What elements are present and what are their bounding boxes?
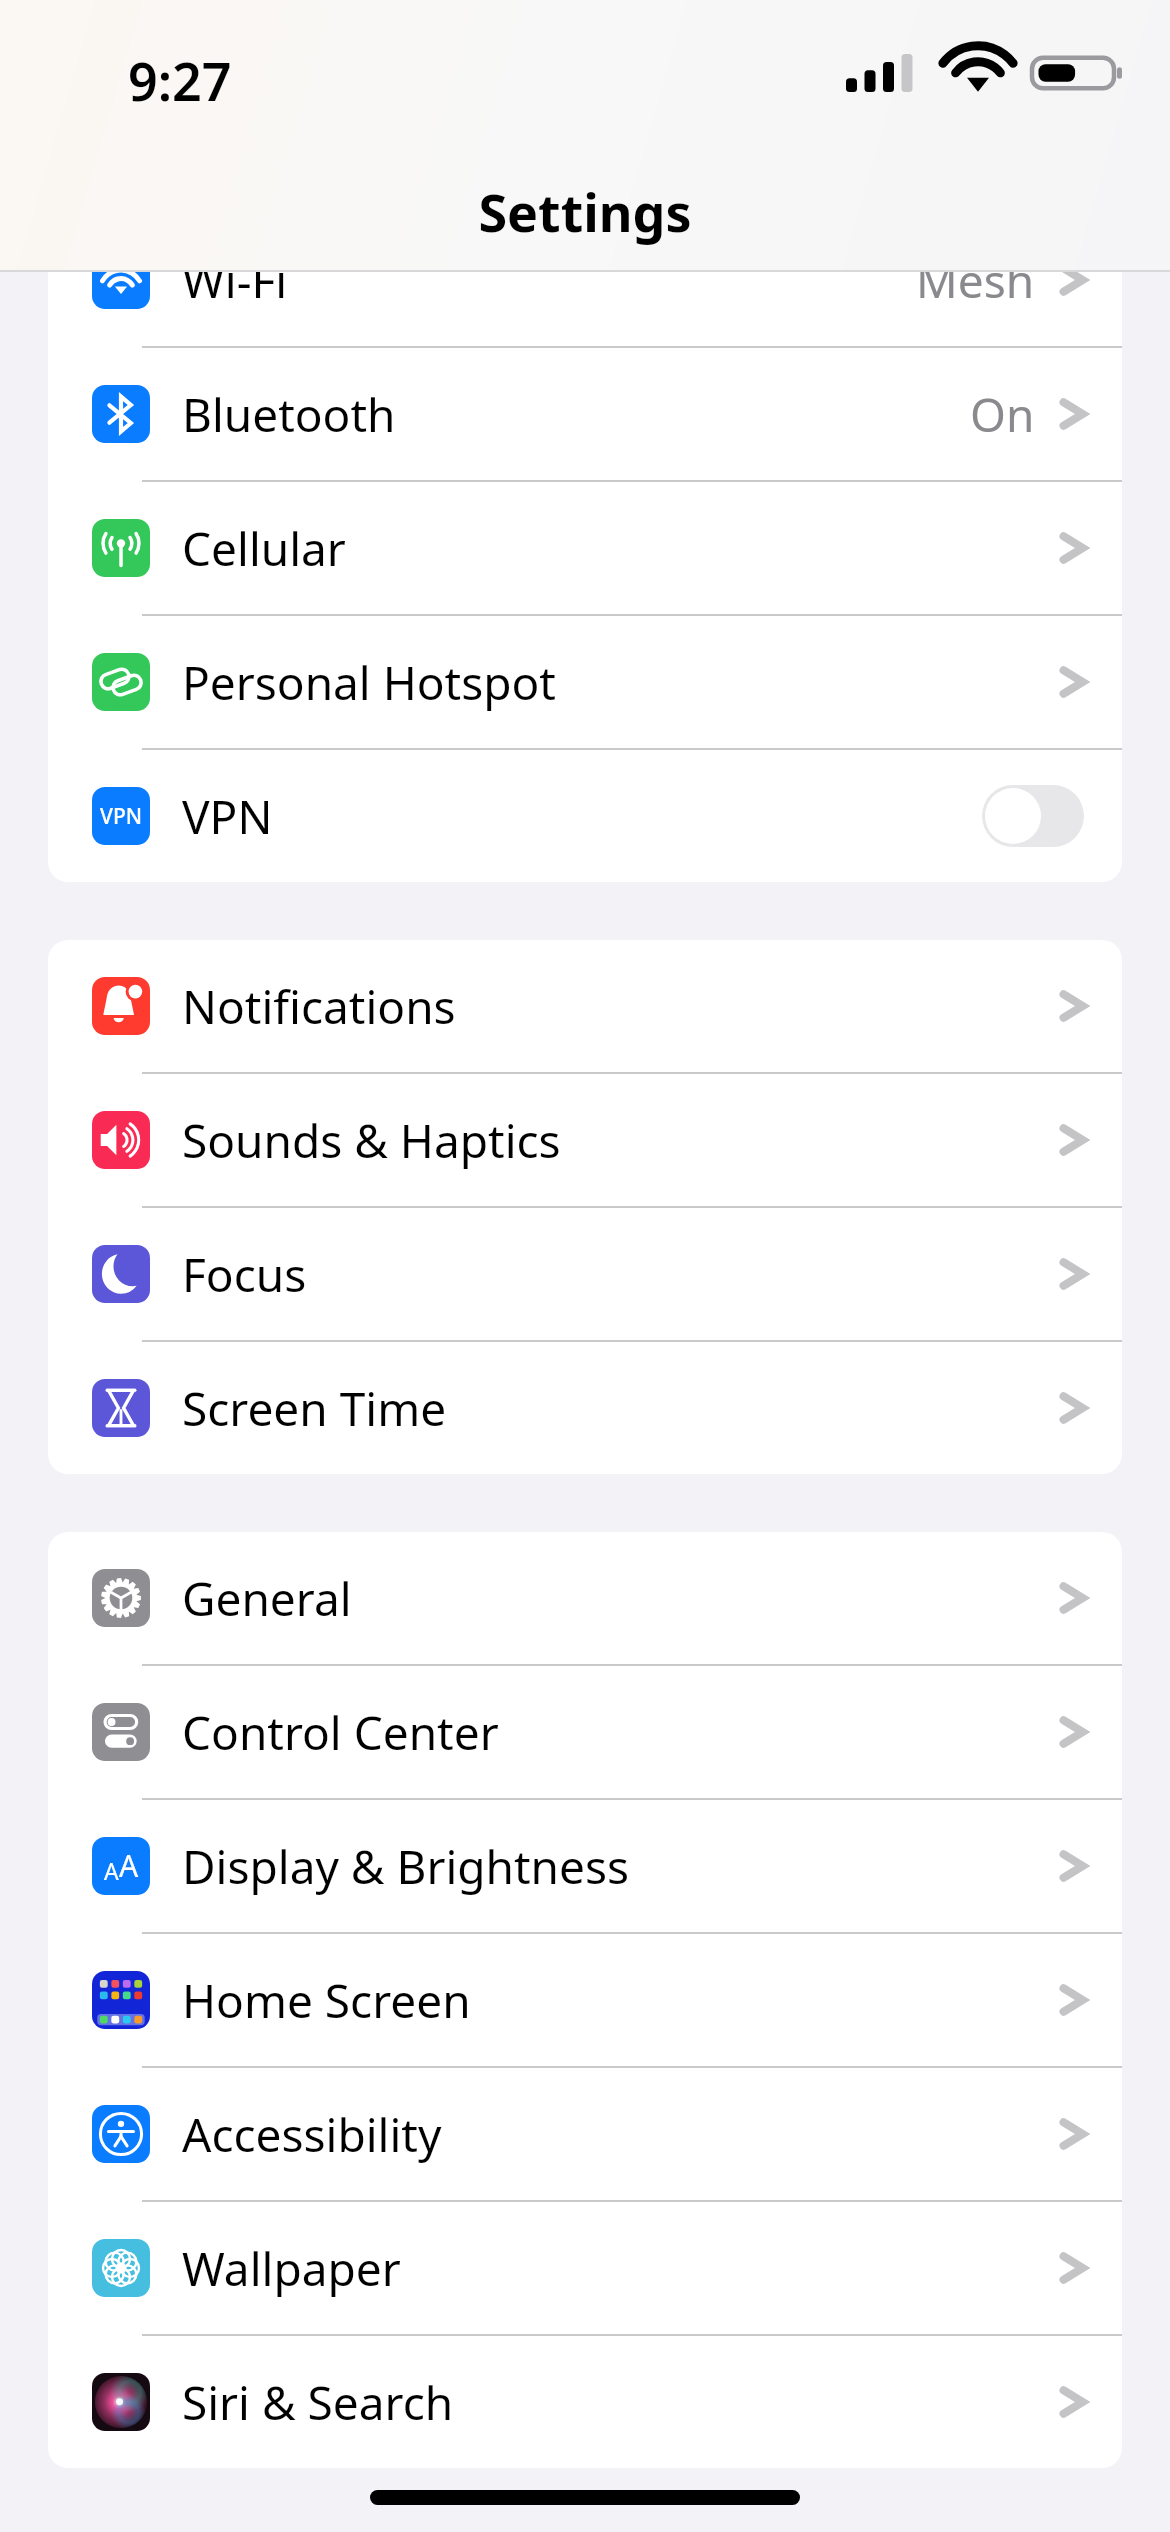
button[interactable]: Screen Time — [48, 1342, 1122, 1474]
button[interactable]: Bluetooth — [48, 348, 1122, 480]
staticText: Control Center — [182, 1701, 499, 1764]
staticText: VPN — [100, 802, 143, 831]
staticText: Notifications — [182, 975, 456, 1038]
staticText: VPN — [182, 785, 273, 848]
staticText: A — [104, 1855, 119, 1886]
staticText: Home Screen — [182, 1969, 471, 2032]
button[interactable]: VPN toggle, off — [982, 785, 1084, 847]
staticText: Screen Time — [182, 1377, 447, 1440]
staticText: Siri & Search — [182, 2371, 454, 2434]
button[interactable]: Home Screen — [48, 1934, 1122, 2066]
button[interactable]: A — [48, 1800, 1122, 1932]
staticText: Cellular — [182, 517, 346, 580]
staticText: Settings — [0, 176, 1170, 247]
button[interactable]: Cellular — [48, 482, 1122, 614]
staticText: A — [119, 1845, 139, 1886]
staticText: Display & Brightness — [182, 1835, 630, 1898]
staticText: Accessibility — [182, 2103, 442, 2166]
button[interactable]: Personal Hotspot — [48, 616, 1122, 748]
staticText: 9:27 — [128, 45, 232, 116]
button[interactable]: General — [48, 1532, 1122, 1664]
button[interactable]: Wallpaper — [48, 2202, 1122, 2334]
button[interactable]: Accessibility — [48, 2068, 1122, 2200]
staticText: Focus — [182, 1243, 307, 1306]
staticText: Mesh — [916, 272, 1035, 312]
button[interactable]: Focus — [48, 1208, 1122, 1340]
button[interactable]: Control Center — [48, 1666, 1122, 1798]
button[interactable]: Sounds & Haptics — [48, 1074, 1122, 1206]
button[interactable]: VPN — [48, 750, 1122, 882]
staticText: Sounds & Haptics — [182, 1109, 561, 1172]
button[interactable]: Wi-Fi — [48, 272, 1122, 346]
staticText: Wi-Fi — [182, 272, 288, 312]
staticText: Personal Hotspot — [182, 651, 556, 714]
staticText: General — [182, 1567, 352, 1630]
staticText: Wallpaper — [182, 2237, 401, 2300]
staticText: Bluetooth — [182, 383, 396, 446]
staticText: On — [970, 383, 1035, 446]
button[interactable]: Siri & Search — [48, 2336, 1122, 2468]
button[interactable]: Notifications — [48, 940, 1122, 1072]
